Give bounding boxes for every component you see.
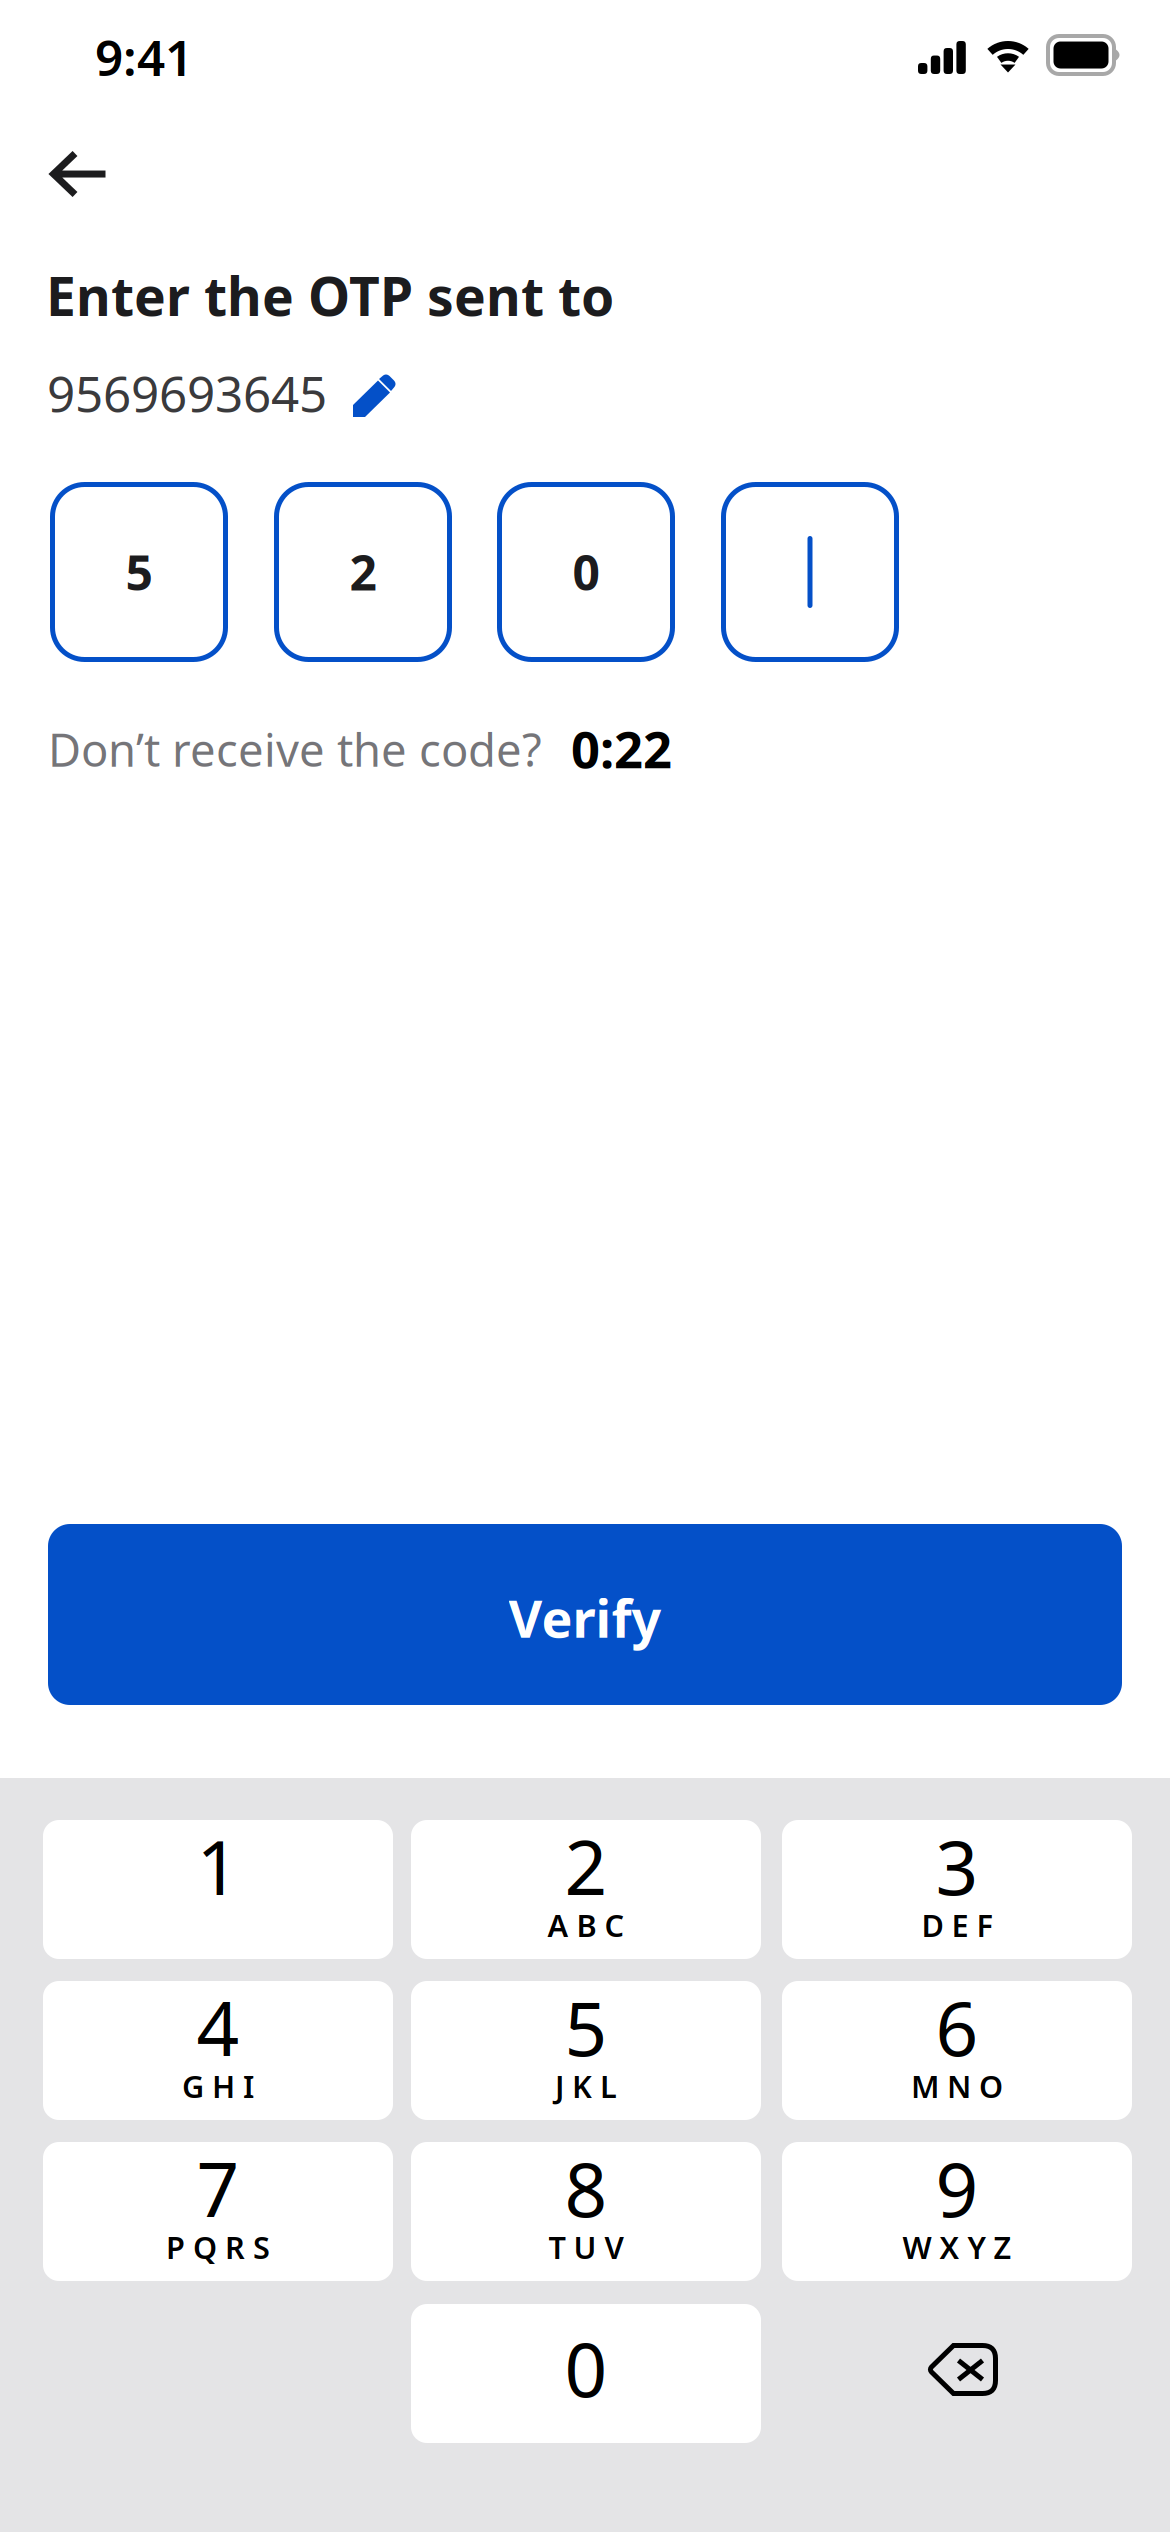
staticText: 0 bbox=[564, 2318, 607, 2418]
staticText: 9:41 bbox=[95, 24, 193, 89]
staticText: D E F bbox=[921, 1905, 992, 1945]
button[interactable]: 2 bbox=[276, 484, 449, 659]
staticText: Verify bbox=[508, 1583, 661, 1652]
staticText: 4 bbox=[196, 1977, 239, 2077]
button[interactable]: Verify bbox=[48, 1524, 1122, 1705]
button[interactable]: Back bbox=[12, 119, 146, 229]
button[interactable]: 3 bbox=[782, 1820, 1132, 1959]
staticText: M N O bbox=[911, 2066, 1003, 2106]
button[interactable]: 5 bbox=[411, 1981, 761, 2120]
staticText: G H I bbox=[182, 2066, 254, 2106]
staticText: 0:22 bbox=[571, 715, 672, 782]
button[interactable]: 6 bbox=[782, 1981, 1132, 2120]
staticText: 2 bbox=[349, 540, 376, 604]
staticText: 9569693645 bbox=[47, 360, 327, 425]
staticText: P Q R S bbox=[166, 2227, 270, 2267]
button[interactable]: Delete bbox=[782, 2304, 1132, 2443]
staticText: Don’t receive the code? bbox=[48, 719, 542, 779]
button[interactable]: 9 bbox=[782, 2142, 1132, 2281]
button[interactable]: 5 bbox=[52, 484, 225, 659]
button[interactable] bbox=[723, 484, 896, 659]
staticText: W X Y Z bbox=[902, 2227, 1011, 2267]
staticText: 5 bbox=[564, 1977, 607, 2077]
staticText: T U V bbox=[548, 2227, 623, 2267]
button[interactable]: 8 bbox=[411, 2142, 761, 2281]
button[interactable]: Edit phone number bbox=[335, 355, 415, 435]
staticText: J K L bbox=[555, 2066, 617, 2106]
staticText: 2 bbox=[564, 1816, 607, 1916]
staticText: 1 bbox=[196, 1816, 239, 1916]
staticText: 5 bbox=[125, 540, 152, 604]
staticText: 3 bbox=[935, 1816, 978, 1916]
button[interactable]: 4 bbox=[43, 1981, 393, 2120]
staticText: A B C bbox=[547, 1905, 624, 1945]
staticText: 9 bbox=[935, 2138, 978, 2238]
button[interactable]: 0 bbox=[499, 484, 672, 659]
button[interactable]: 2 bbox=[411, 1820, 761, 1959]
button[interactable]: 1 bbox=[43, 1820, 393, 1959]
button[interactable]: 7 bbox=[43, 2142, 393, 2281]
staticText: Enter the OTP sent to bbox=[46, 260, 614, 331]
staticText: 6 bbox=[935, 1977, 978, 2077]
staticText: 8 bbox=[564, 2138, 607, 2238]
button[interactable]: 0 bbox=[411, 2304, 761, 2443]
staticText: 7 bbox=[196, 2138, 239, 2238]
staticText: 0 bbox=[572, 540, 599, 604]
